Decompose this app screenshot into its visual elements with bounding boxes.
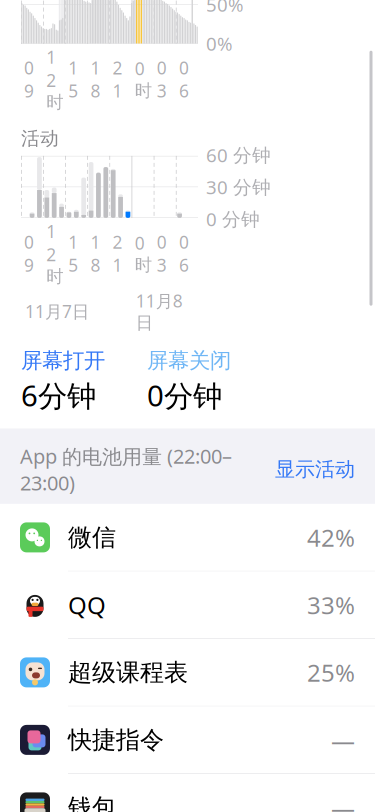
staticText: 11月7日 (25, 300, 89, 323)
staticText: 30 分钟 (206, 174, 271, 199)
staticText: 06 (179, 56, 189, 102)
staticText: 0时 (135, 231, 152, 276)
staticText: 15 (68, 230, 78, 276)
staticText: 50% (206, 0, 244, 17)
staticText: 18 (90, 230, 100, 276)
staticText: 0分钟 (147, 376, 222, 415)
staticText: 6分钟 (21, 376, 96, 415)
staticText: 显示活动 (275, 457, 355, 482)
staticText: 0% (206, 31, 233, 56)
staticText: 12时 (46, 220, 63, 287)
staticText: — (331, 724, 355, 756)
button[interactable]: 微信 (0, 504, 375, 571)
staticText: 11月8日 (136, 289, 183, 333)
staticText: 12时 (46, 46, 63, 113)
staticText: 06 (179, 230, 189, 276)
staticText: App 的电池用量 (22:00–23:00) (20, 443, 232, 496)
staticText: 25% (307, 656, 355, 688)
staticText: 超级课程表 (68, 658, 188, 687)
button[interactable]: 快捷指令 (0, 706, 375, 774)
staticText: 18 (90, 56, 100, 102)
button[interactable]: 显示活动 (275, 453, 355, 486)
staticText: 快捷指令 (68, 725, 164, 755)
staticText: 33% (307, 589, 355, 621)
staticText: 钱包 (68, 793, 116, 812)
staticText: 21 (112, 230, 122, 276)
staticText: 03 (157, 56, 167, 102)
staticText: 21 (112, 56, 122, 102)
staticText: 0 分钟 (206, 206, 260, 231)
staticText: 03 (157, 230, 167, 276)
staticText: 09 (24, 230, 34, 276)
staticText: 15 (68, 56, 78, 102)
button[interactable]: QQ (0, 571, 375, 639)
staticText: 微信 (68, 523, 116, 552)
staticText: 0时 (135, 57, 152, 101)
staticText: 09 (24, 56, 34, 102)
staticText: — (331, 791, 355, 812)
staticText: 活动 (21, 127, 59, 150)
button[interactable]: 超级课程表 (0, 639, 375, 706)
staticText: QQ (68, 589, 106, 621)
staticText: 屏幕关闭 (147, 347, 231, 374)
button[interactable]: 钱包 (0, 774, 375, 812)
staticText: 60 分钟 (206, 142, 271, 167)
staticText: 42% (307, 521, 355, 553)
staticText: 屏幕打开 (21, 347, 105, 374)
